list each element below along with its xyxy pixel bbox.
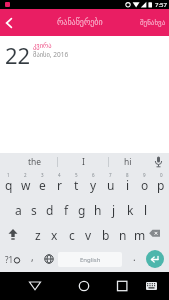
- button[interactable]: g: [74, 196, 90, 221]
- button[interactable]: [0, 221, 29, 246]
- staticText: y: [90, 177, 97, 193]
- button[interactable]: 4: [51, 171, 68, 196]
- button[interactable]: [40, 246, 57, 272]
- button[interactable]: [148, 153, 169, 171]
- staticText: მაისი, 2016: [33, 50, 69, 59]
- staticText: კვირა: [33, 42, 52, 50]
- button[interactable]: [0, 9, 18, 36]
- button[interactable]: l: [138, 196, 154, 221]
- button[interactable]: [141, 276, 161, 296]
- button[interactable]: the: [12, 153, 57, 171]
- staticText: 7:57: [155, 1, 167, 9]
- staticText: p: [157, 177, 165, 193]
- staticText: hi: [124, 156, 132, 168]
- button[interactable]: .: [123, 246, 145, 272]
- button[interactable]: I: [58, 153, 108, 171]
- staticText: z: [35, 227, 41, 243]
- staticText: h: [94, 202, 102, 218]
- staticText: w: [21, 177, 31, 193]
- button[interactable]: d: [42, 196, 58, 221]
- button[interactable]: hi: [109, 153, 147, 171]
- button[interactable]: English: [57, 246, 123, 272]
- staticText: .: [133, 250, 136, 264]
- staticText: I: [82, 156, 85, 168]
- button[interactable]: v: [80, 221, 97, 246]
- staticText: 1: [7, 172, 10, 178]
- staticText: the: [28, 156, 42, 168]
- staticText: j: [112, 202, 116, 218]
- button[interactable]: 1: [0, 171, 17, 196]
- button[interactable]: f: [58, 196, 74, 221]
- button[interactable]: [148, 221, 169, 246]
- staticText: 22: [5, 40, 31, 70]
- button[interactable]: [112, 276, 132, 296]
- button[interactable]: 8: [119, 171, 136, 196]
- staticText: k: [127, 202, 134, 218]
- button[interactable]: k: [122, 196, 138, 221]
- staticText: 7: [109, 172, 112, 178]
- button[interactable]: 6: [85, 171, 102, 196]
- button[interactable]: z: [29, 221, 46, 246]
- staticText: 6: [92, 172, 95, 178]
- staticText: g: [78, 202, 86, 218]
- staticText: a: [15, 202, 22, 218]
- staticText: 3: [41, 172, 44, 178]
- staticText: English: [80, 256, 101, 264]
- button[interactable]: 2: [17, 171, 34, 196]
- button[interactable]: n: [114, 221, 131, 246]
- staticText: i: [126, 177, 130, 193]
- staticText: v: [85, 227, 92, 243]
- button[interactable]: j: [106, 196, 122, 221]
- button[interactable]: [25, 276, 45, 296]
- staticText: x: [51, 227, 58, 243]
- button[interactable]: x: [46, 221, 63, 246]
- button[interactable]: [74, 276, 94, 296]
- staticText: f: [64, 202, 69, 218]
- staticText: რანაწერები: [57, 18, 103, 27]
- staticText: 0: [160, 172, 163, 178]
- staticText: l: [144, 202, 148, 218]
- staticText: s: [31, 202, 37, 218]
- staticText: o: [141, 177, 149, 193]
- staticText: 5: [75, 172, 78, 178]
- staticText: შენახვა: [140, 19, 166, 27]
- button[interactable]: შენახვა: [140, 9, 169, 36]
- button[interactable]: 9: [136, 171, 153, 196]
- button[interactable]: 0: [153, 171, 169, 196]
- staticText: d: [46, 202, 54, 218]
- staticText: 2: [24, 172, 27, 178]
- staticText: r: [57, 177, 62, 193]
- staticText: 4: [58, 172, 61, 178]
- staticText: n: [119, 227, 127, 243]
- button[interactable]: ?1: [0, 246, 24, 272]
- button[interactable]: b: [97, 221, 114, 246]
- staticText: c: [69, 227, 75, 243]
- button[interactable]: 7: [102, 171, 119, 196]
- staticText: 9: [143, 172, 146, 178]
- button[interactable]: 5: [68, 171, 85, 196]
- button[interactable]: h: [90, 196, 106, 221]
- button[interactable]: 3: [34, 171, 51, 196]
- staticText: ?1: [5, 254, 14, 265]
- staticText: m: [134, 227, 146, 243]
- button[interactable]: a: [10, 196, 26, 221]
- staticText: q: [5, 177, 13, 193]
- button[interactable]: s: [26, 196, 42, 221]
- button[interactable]: [145, 246, 169, 272]
- button[interactable]: m: [131, 221, 148, 246]
- staticText: ,: [31, 250, 34, 264]
- staticText: e: [39, 177, 46, 193]
- button[interactable]: c: [63, 221, 80, 246]
- button[interactable]: ,: [24, 246, 40, 272]
- staticText: u: [107, 177, 115, 193]
- staticText: t: [74, 177, 79, 193]
- staticText: b: [102, 227, 110, 243]
- staticText: 8: [126, 172, 129, 178]
